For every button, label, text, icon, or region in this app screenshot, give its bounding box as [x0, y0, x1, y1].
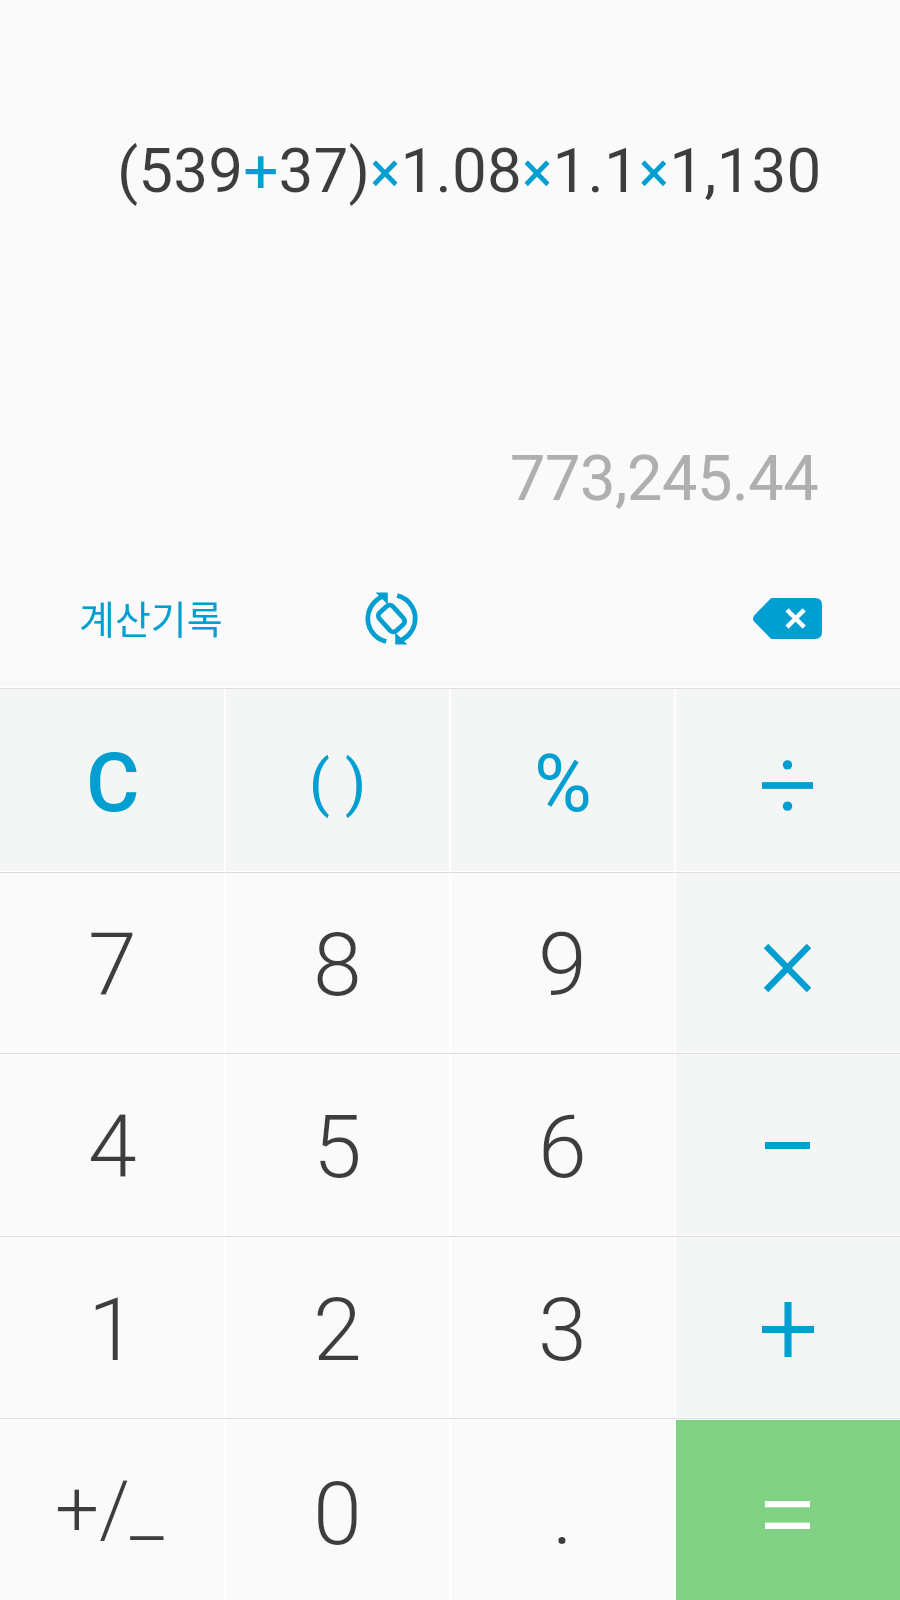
- button[interactable]: [675, 1052, 900, 1235]
- button[interactable]: 1: [0, 1235, 225, 1417]
- button[interactable]: 계산기록: [51, 569, 251, 665]
- button[interactable]: C: [0, 687, 225, 871]
- button[interactable]: [675, 687, 900, 871]
- staticText: 8: [313, 913, 362, 1016]
- button[interactable]: 4: [0, 1052, 225, 1235]
- staticText: C: [86, 735, 140, 831]
- button[interactable]: 3: [450, 1235, 675, 1417]
- button[interactable]: Rotate screen: [341, 568, 441, 669]
- button[interactable]: 0: [225, 1417, 450, 1600]
- button[interactable]: ( ): [225, 687, 450, 871]
- button[interactable]: .: [450, 1417, 675, 1600]
- staticText: .: [552, 1462, 574, 1565]
- staticText: 0: [313, 1462, 362, 1565]
- button[interactable]: 2: [225, 1235, 450, 1417]
- staticText: 2: [313, 1278, 362, 1381]
- button[interactable]: 5: [225, 1052, 450, 1235]
- staticText: %: [534, 738, 592, 831]
- staticText: 4: [88, 1095, 137, 1198]
- button[interactable]: Equals: [675, 1417, 900, 1600]
- button[interactable]: +/_: [0, 1417, 225, 1600]
- staticText: ( ): [309, 747, 367, 818]
- staticText: 1: [88, 1278, 137, 1381]
- staticText: 6: [538, 1095, 587, 1198]
- button[interactable]: %: [450, 687, 675, 871]
- staticText: 7: [88, 913, 137, 1016]
- staticText: (539+37)×1.08×1.1×1,130: [117, 134, 822, 207]
- staticText: 9: [538, 913, 587, 1016]
- staticText: +/_: [55, 1464, 164, 1555]
- button[interactable]: 9: [450, 871, 675, 1052]
- button[interactable]: Backspace: [726, 558, 847, 678]
- button[interactable]: [675, 871, 900, 1052]
- button[interactable]: 8: [225, 871, 450, 1052]
- staticText: 3: [538, 1278, 587, 1381]
- staticText: 계산기록: [79, 589, 223, 645]
- button[interactable]: 7: [0, 871, 225, 1052]
- staticText: 5: [313, 1095, 362, 1198]
- button[interactable]: 6: [450, 1052, 675, 1235]
- staticText: 773,245.44: [510, 442, 819, 516]
- button[interactable]: [675, 1235, 900, 1417]
